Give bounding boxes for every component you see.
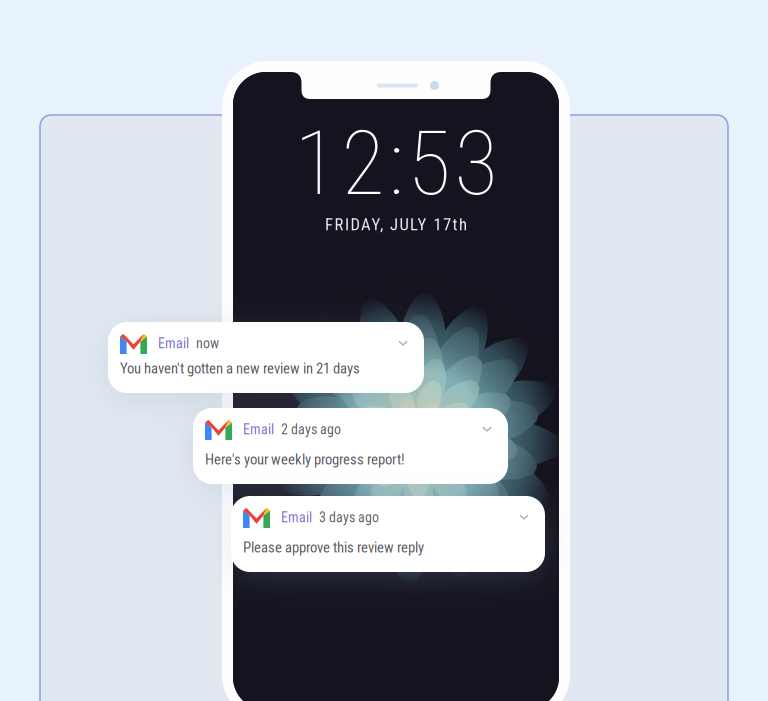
staticText: now	[196, 335, 219, 352]
staticText: Email	[243, 421, 274, 438]
staticText: You haven't gotten a new review in 21 da…	[120, 360, 360, 377]
button[interactable]: Email	[108, 322, 424, 393]
staticText: 3 days ago	[319, 509, 379, 526]
staticText: Email	[281, 509, 312, 526]
staticText: Here's your weekly progress report!	[205, 451, 405, 468]
staticText: 2 days ago	[281, 421, 341, 438]
button[interactable]: Email	[231, 496, 545, 572]
staticText: FRIDAY, JULY 17th	[325, 215, 467, 234]
staticText: Please approve this review reply	[243, 539, 424, 556]
button[interactable]: Email	[193, 408, 508, 484]
staticText: Email	[158, 335, 189, 352]
staticText: 12:53	[294, 111, 497, 216]
